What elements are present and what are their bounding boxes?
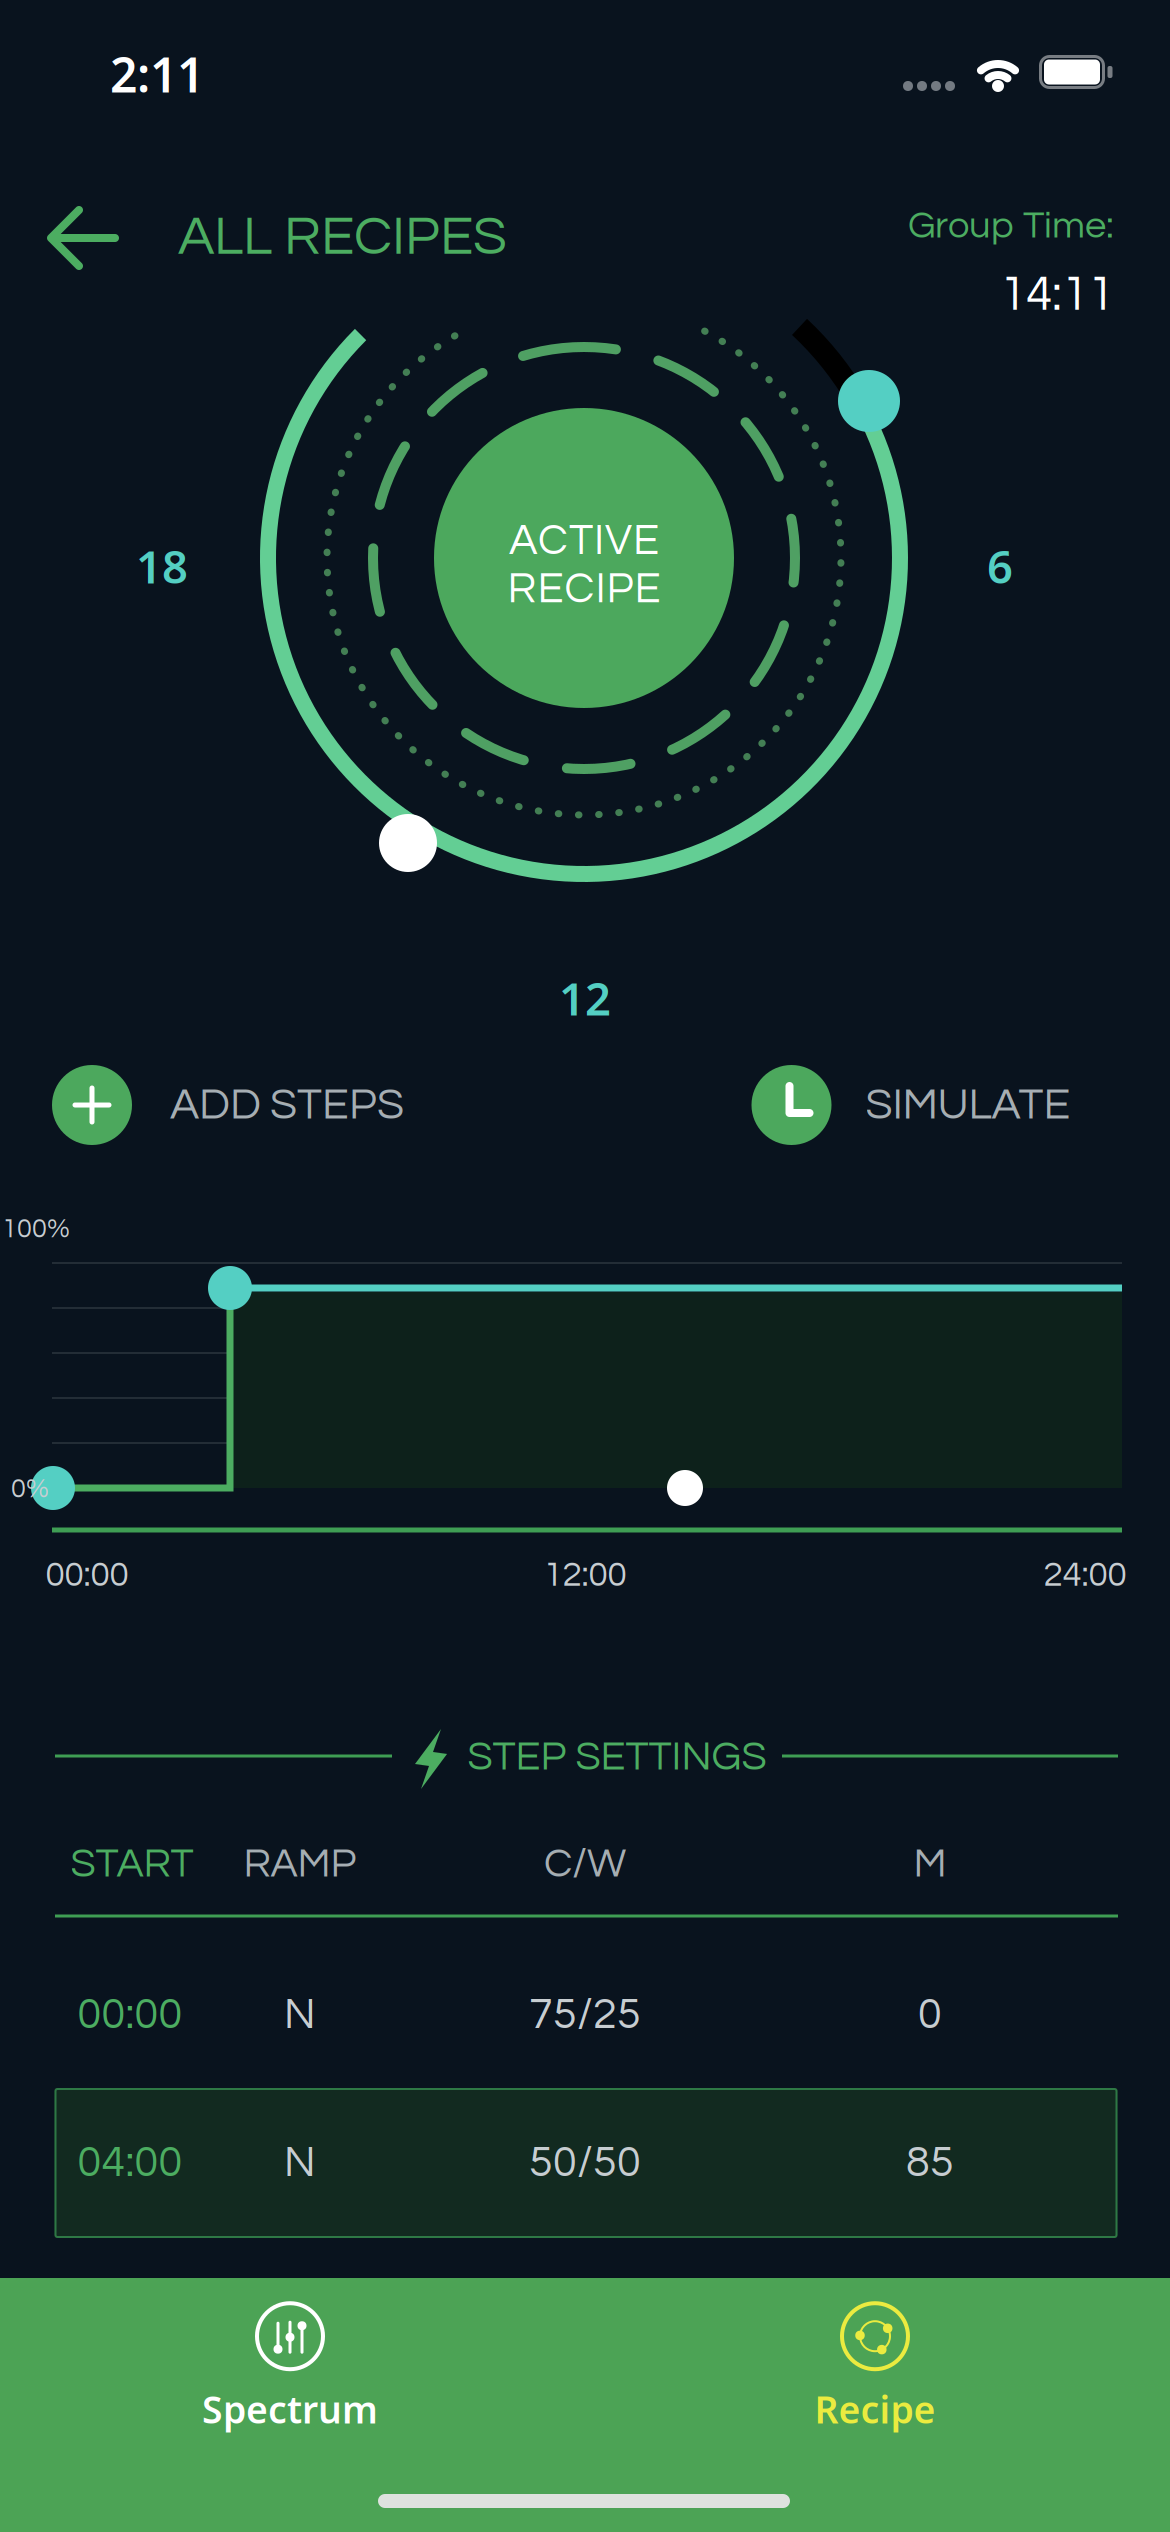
staticText: Spectrum — [202, 2384, 378, 2434]
staticText: 00:00 — [77, 1993, 182, 2037]
staticText: START — [70, 1843, 193, 1885]
staticText: ADD STEPS — [170, 1082, 404, 1128]
staticText: 14:11 — [1000, 270, 1114, 320]
staticText: ACTIVE — [509, 519, 659, 563]
staticText: 6 — [987, 536, 1013, 596]
staticText: N — [284, 2141, 316, 2185]
staticText: 00:00 — [45, 1557, 128, 1593]
staticText: 75/25 — [529, 1993, 641, 2037]
button[interactable]: Spectrum — [202, 2302, 378, 2434]
staticText: 12 — [559, 968, 611, 1028]
staticText: RAMP — [243, 1843, 356, 1885]
staticText: STEP SETTINGS — [467, 1736, 766, 1778]
staticText: M — [913, 1843, 946, 1885]
staticText: 85 — [906, 2141, 954, 2185]
staticText: 04:00 — [77, 2141, 182, 2185]
staticText: 24:00 — [1043, 1557, 1126, 1593]
staticText: 50/50 — [529, 2141, 641, 2185]
staticText: N — [284, 1993, 316, 2037]
button[interactable]: Recipe — [814, 2302, 935, 2434]
staticText: Group Time: — [908, 206, 1114, 245]
button[interactable]: SIMULATE — [751, 1065, 1070, 1145]
button[interactable]: 04:00 — [0, 2088, 1170, 2238]
button[interactable]: 00:00 — [0, 1940, 1170, 2090]
staticText: 12:00 — [543, 1557, 626, 1593]
staticText: 0 — [918, 1993, 942, 2037]
staticText: 18 — [136, 536, 188, 596]
staticText: 2:11 — [110, 42, 204, 106]
staticText: SIMULATE — [865, 1082, 1070, 1128]
staticText: Recipe — [814, 2384, 935, 2434]
button[interactable]: Back — [43, 193, 133, 283]
staticText: RECIPE — [507, 567, 660, 611]
staticText: 100% — [2, 1215, 70, 1243]
button[interactable]: ADD STEPS — [52, 1065, 404, 1145]
staticText: 0% — [11, 1475, 49, 1503]
staticText: ALL RECIPES — [178, 209, 507, 265]
staticText: C/W — [544, 1843, 626, 1885]
